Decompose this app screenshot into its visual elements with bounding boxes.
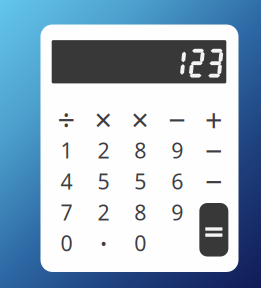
- button[interactable]: ×: [123, 105, 157, 133]
- button[interactable]: +: [197, 105, 231, 133]
- staticText: 5: [97, 167, 109, 195]
- staticText: 0: [134, 229, 146, 257]
- button[interactable]: 1: [49, 136, 83, 164]
- button[interactable]: 5: [86, 167, 120, 195]
- button[interactable]: 2: [86, 198, 120, 226]
- staticText: 6: [171, 167, 183, 195]
- staticText: −: [205, 161, 223, 201]
- button[interactable]: ÷: [49, 105, 83, 133]
- staticText: 1: [60, 136, 72, 164]
- button[interactable]: 0: [49, 229, 83, 257]
- staticText: 2: [97, 136, 109, 164]
- button[interactable]: Equals: [199, 203, 228, 256]
- button[interactable]: 8: [123, 136, 157, 164]
- button[interactable]: −: [197, 167, 231, 195]
- staticText: 7: [60, 198, 72, 226]
- button[interactable]: 4: [49, 167, 83, 195]
- button[interactable]: 6: [160, 167, 194, 195]
- button[interactable]: 7: [49, 198, 83, 226]
- staticText: 5: [134, 167, 146, 195]
- staticText: ×: [131, 99, 149, 140]
- button[interactable]: 8: [123, 198, 157, 226]
- staticText: 4: [60, 167, 72, 195]
- staticText: +: [205, 99, 223, 140]
- staticText: ×: [94, 99, 112, 140]
- staticText: ÷: [57, 99, 75, 140]
- button[interactable]: ·: [86, 229, 120, 257]
- button[interactable]: −: [197, 136, 231, 164]
- button[interactable]: 0: [123, 229, 157, 257]
- staticText: 2: [97, 198, 109, 226]
- button[interactable]: 9: [160, 198, 194, 226]
- staticText: −: [168, 99, 186, 140]
- button[interactable]: −: [160, 105, 194, 133]
- staticText: 9: [171, 198, 183, 226]
- button[interactable]: ×: [86, 105, 120, 133]
- staticText: 0: [60, 229, 72, 257]
- button[interactable]: 2: [86, 136, 120, 164]
- staticText: ·: [99, 223, 107, 263]
- staticText: 9: [171, 136, 183, 164]
- staticText: −: [205, 130, 223, 171]
- staticText: 8: [134, 198, 146, 226]
- button[interactable]: 5: [123, 167, 157, 195]
- staticText: 8: [134, 136, 146, 164]
- button[interactable]: 9: [160, 136, 194, 164]
